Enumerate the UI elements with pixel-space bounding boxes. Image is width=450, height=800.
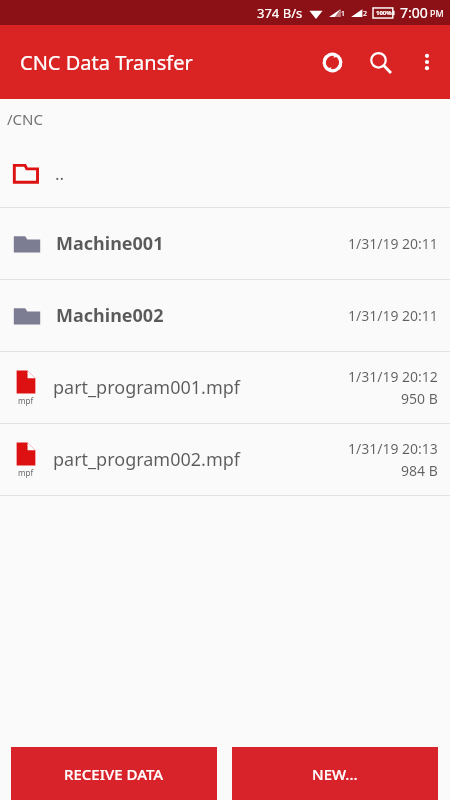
staticText: NEW... <box>312 764 358 784</box>
staticText: part_program002.mpf <box>53 447 348 472</box>
staticText: 1 <box>341 9 346 19</box>
staticText: 984 B <box>401 461 438 480</box>
button[interactable]: mpf <box>0 352 450 423</box>
button[interactable]: .. <box>0 139 450 207</box>
staticText: 7:00 <box>400 3 428 22</box>
staticText: 1/31/19 20:11 <box>348 234 438 253</box>
staticText: 2 <box>363 9 368 19</box>
button[interactable]: More options <box>404 39 450 85</box>
staticText: 1/31/19 20:13 <box>348 439 438 458</box>
staticText: PM <box>430 7 444 19</box>
button[interactable]: Refresh <box>308 38 356 86</box>
button[interactable]: Machine001 <box>0 208 450 279</box>
staticText: /CNC <box>7 109 43 129</box>
staticText: Machine001 <box>56 231 348 256</box>
staticText: 1/31/19 20:12 <box>348 367 438 386</box>
staticText: mpf <box>18 467 34 478</box>
staticText: Machine002 <box>56 303 348 328</box>
button[interactable]: mpf <box>0 424 450 495</box>
staticText: part_program001.mpf <box>53 375 348 400</box>
staticText: 1/31/19 20:11 <box>348 306 438 325</box>
staticText: 950 B <box>401 389 438 408</box>
staticText: 100% <box>376 9 392 17</box>
button[interactable]: Machine002 <box>0 280 450 351</box>
button[interactable]: RECEIVE DATA <box>11 747 217 800</box>
button[interactable]: Search <box>356 38 404 86</box>
button[interactable]: NEW... <box>232 747 438 800</box>
staticText: .. <box>55 162 65 185</box>
staticText: mpf <box>18 395 34 406</box>
staticText: 374 B/s <box>257 4 303 22</box>
staticText: CNC Data Transfer <box>20 49 193 76</box>
staticText: RECEIVE DATA <box>64 764 164 784</box>
